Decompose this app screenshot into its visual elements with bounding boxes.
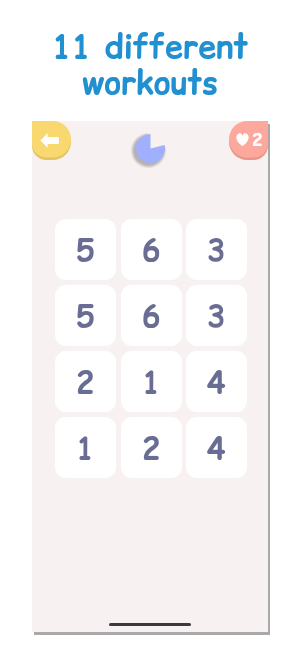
staticText: 1 <box>76 427 95 469</box>
staticText: workouts <box>0 60 300 105</box>
staticText: 1 <box>142 361 161 403</box>
staticText: 2 <box>252 128 263 152</box>
button[interactable]: 2 <box>229 121 268 160</box>
staticText: 2 <box>142 427 161 469</box>
staticText: 5 <box>76 229 95 271</box>
staticText: 5 <box>76 295 95 337</box>
button[interactable]: 3 <box>186 219 247 280</box>
button[interactable]: 5 <box>55 285 116 346</box>
staticText: 4 <box>207 427 226 469</box>
button[interactable]: 2 <box>121 417 182 478</box>
button[interactable]: 6 <box>121 285 182 346</box>
button[interactable]: 3 <box>186 285 247 346</box>
button[interactable]: 6 <box>121 219 182 280</box>
staticText: 6 <box>142 229 161 271</box>
button[interactable]: 1 <box>121 351 182 412</box>
staticText: 6 <box>142 295 161 337</box>
staticText: 3 <box>207 295 226 337</box>
button[interactable]: 4 <box>186 417 247 478</box>
button[interactable]: 4 <box>186 351 247 412</box>
staticText: 2 <box>76 361 95 403</box>
button[interactable]: Back <box>32 121 71 160</box>
staticText: 11 different <box>0 24 300 69</box>
button[interactable]: 5 <box>55 219 116 280</box>
button[interactable]: 2 <box>55 351 116 412</box>
button[interactable]: 1 <box>55 417 116 478</box>
staticText: 3 <box>207 229 226 271</box>
staticText: 4 <box>207 361 226 403</box>
